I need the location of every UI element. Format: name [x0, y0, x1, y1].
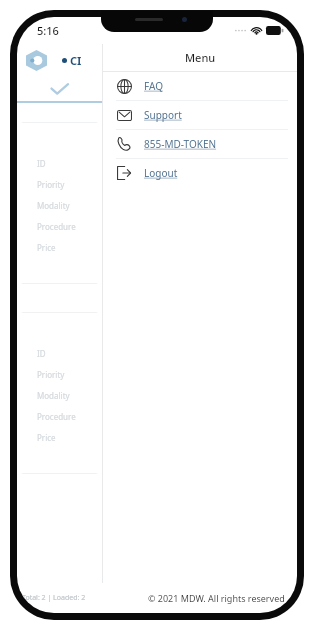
staticText: Logout: [144, 166, 178, 180]
staticText: Modality: [37, 390, 70, 401]
staticText: Support: [144, 108, 182, 122]
button[interactable]: Logout: [103, 159, 297, 187]
staticText: Procedure: [37, 221, 76, 232]
button[interactable]: ID: [20, 312, 99, 474]
staticText: ID: [37, 158, 46, 169]
button[interactable]: Completed tab: [17, 77, 102, 101]
staticText: Modality: [37, 200, 70, 211]
staticText: Total: 2 | Loaded: 2: [22, 593, 86, 603]
staticText: FAQ: [144, 79, 163, 93]
staticText: 855-MD-TOKEN: [144, 137, 217, 151]
button[interactable]: 855-MD-TOKEN: [103, 130, 297, 158]
staticText: ID: [37, 348, 46, 359]
button[interactable]: Support: [103, 101, 297, 129]
button[interactable]: App logo: [26, 50, 47, 71]
staticText: Procedure: [37, 411, 76, 422]
button[interactable]: ID: [20, 122, 99, 284]
staticText: Menu: [185, 50, 216, 65]
staticText: Priority: [37, 369, 65, 380]
button[interactable]: © 2021 MDW. All rights reserved: [148, 592, 285, 604]
staticText: Price: [37, 432, 56, 443]
staticText: © 2021 MDW. All rights reserved: [148, 592, 285, 604]
staticText: Price: [37, 242, 56, 253]
staticText: 5:16: [37, 23, 59, 38]
staticText: CI: [70, 53, 82, 68]
button[interactable]: FAQ: [103, 72, 297, 100]
staticText: Priority: [37, 179, 65, 190]
